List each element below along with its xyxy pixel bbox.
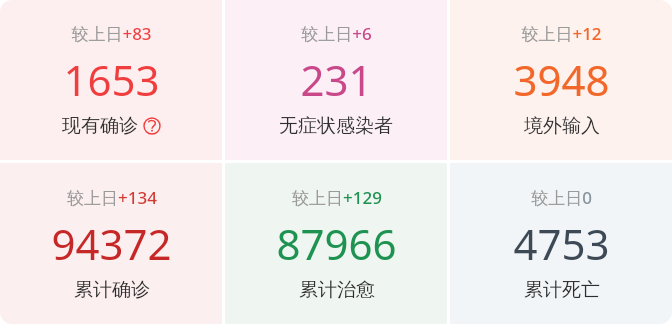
staticText: 无症状感染者 (279, 114, 393, 138)
button[interactable]: 较上日+6 (225, 0, 447, 160)
staticText: 较上日0 (531, 186, 592, 209)
staticText: 较上日+134 (67, 186, 157, 209)
staticText: 较上日+12 (521, 22, 602, 45)
staticText: 较上日+83 (71, 22, 152, 45)
staticText: 94372 (51, 215, 172, 272)
staticText: 境外输入 (524, 114, 600, 138)
button[interactable]: 较上日+12 (450, 0, 672, 160)
staticText: 累计确诊 (74, 278, 150, 302)
staticText: 现有确诊 (62, 114, 138, 138)
staticText: 较上日+129 (292, 186, 382, 209)
staticText: 4753 (513, 215, 610, 272)
staticText: 累计治愈 (299, 278, 375, 302)
other: 说明 (143, 117, 161, 135)
staticText: 较上日+6 (301, 22, 372, 45)
button[interactable]: 较上日0 (450, 163, 672, 324)
button[interactable]: 较上日+134 (0, 163, 222, 324)
staticText: 3948 (513, 51, 610, 108)
staticText: 累计死亡 (524, 278, 600, 302)
button[interactable]: 较上日+83 (0, 0, 222, 160)
staticText: 87966 (276, 215, 397, 272)
button[interactable]: 较上日+129 (225, 163, 447, 324)
staticText: 231 (300, 51, 373, 108)
staticText: 1653 (63, 51, 160, 108)
